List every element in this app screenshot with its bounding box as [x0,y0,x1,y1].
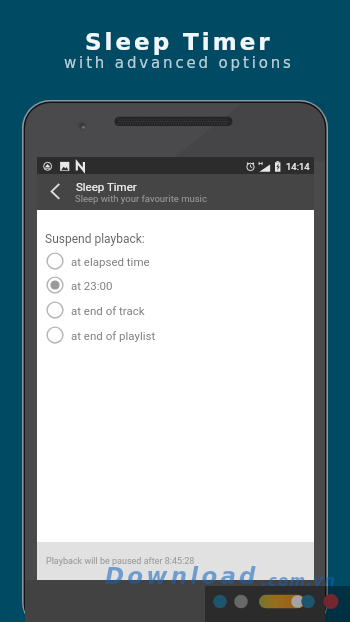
button[interactable]: at end of playlist [37,323,314,347]
staticText: with advanced options [64,54,294,71]
staticText: 14:14 [286,161,310,172]
staticText: Sleep with your favourite music [75,193,207,204]
button[interactable]: Navigate up [37,174,314,210]
button[interactable]: Navigate up [44,174,66,210]
staticText: at 23:00 [71,279,113,292]
staticText: Playback will be paused after 8:45:28 [46,556,195,567]
staticText: .com.vn [261,572,337,589]
button[interactable]: at elapsed time [37,249,314,273]
staticText: Suspend playback: [45,232,145,246]
button[interactable]: at end of track [37,298,314,322]
button[interactable]: at 23:00 [37,273,314,297]
staticText: at end of playlist [71,329,156,342]
staticText: at elapsed time [71,255,150,268]
staticText: at end of track [71,304,145,317]
staticText: Sleep Timer [76,180,137,193]
staticText: Download [105,563,259,590]
staticText: Sleep Timer [85,29,273,56]
